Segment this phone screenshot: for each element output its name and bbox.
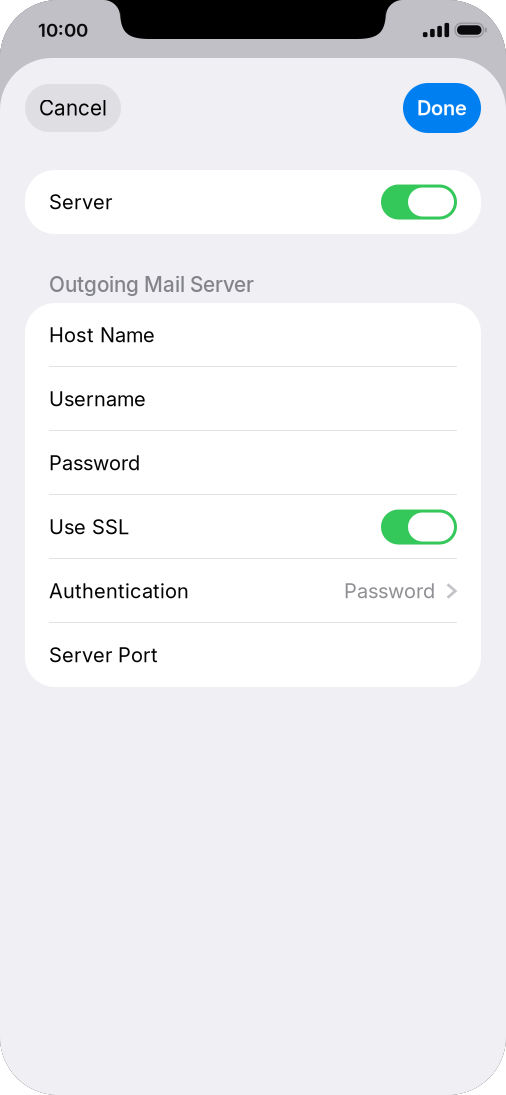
button[interactable]: Done: [403, 83, 481, 133]
staticText: Password: [344, 579, 435, 603]
button[interactable]: Authentication: [25, 559, 481, 623]
staticText: Password: [49, 451, 140, 475]
staticText: Outgoing Mail Server: [49, 272, 254, 297]
staticText: Done: [417, 96, 467, 120]
staticText: Server: [49, 190, 112, 214]
button[interactable]: Username: [25, 367, 481, 431]
button[interactable]: Use SSL: [25, 495, 481, 559]
staticText: Cancel: [39, 95, 107, 120]
staticText: Use SSL: [49, 515, 129, 539]
button[interactable]: Server Port: [25, 623, 481, 687]
staticText: Server Port: [49, 643, 158, 667]
button[interactable]: Password: [25, 431, 481, 495]
staticText: 10:00: [38, 19, 88, 41]
button[interactable]: Host Name: [25, 303, 481, 367]
staticText: Authentication: [49, 579, 189, 603]
button[interactable]: Server: [25, 170, 481, 234]
button[interactable]: Cancel: [25, 84, 121, 132]
staticText: Username: [49, 387, 146, 411]
staticText: Host Name: [49, 323, 155, 347]
